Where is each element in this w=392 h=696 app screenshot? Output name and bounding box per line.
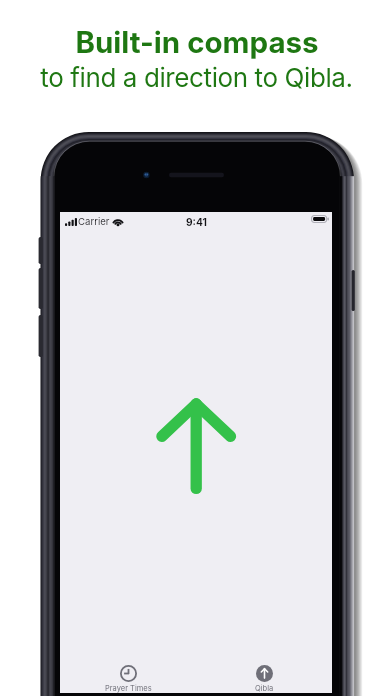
staticText: 9:41: [186, 216, 207, 228]
button[interactable]: Qibla: [226, 660, 302, 693]
staticText: Qibla: [255, 684, 274, 693]
staticText: to find a direction to Qibla.: [40, 62, 353, 93]
staticText: Prayer Times: [105, 684, 152, 693]
button[interactable]: Prayer Times: [90, 660, 166, 693]
staticText: Built-in compass: [75, 24, 319, 60]
staticText: Carrier: [78, 216, 110, 228]
